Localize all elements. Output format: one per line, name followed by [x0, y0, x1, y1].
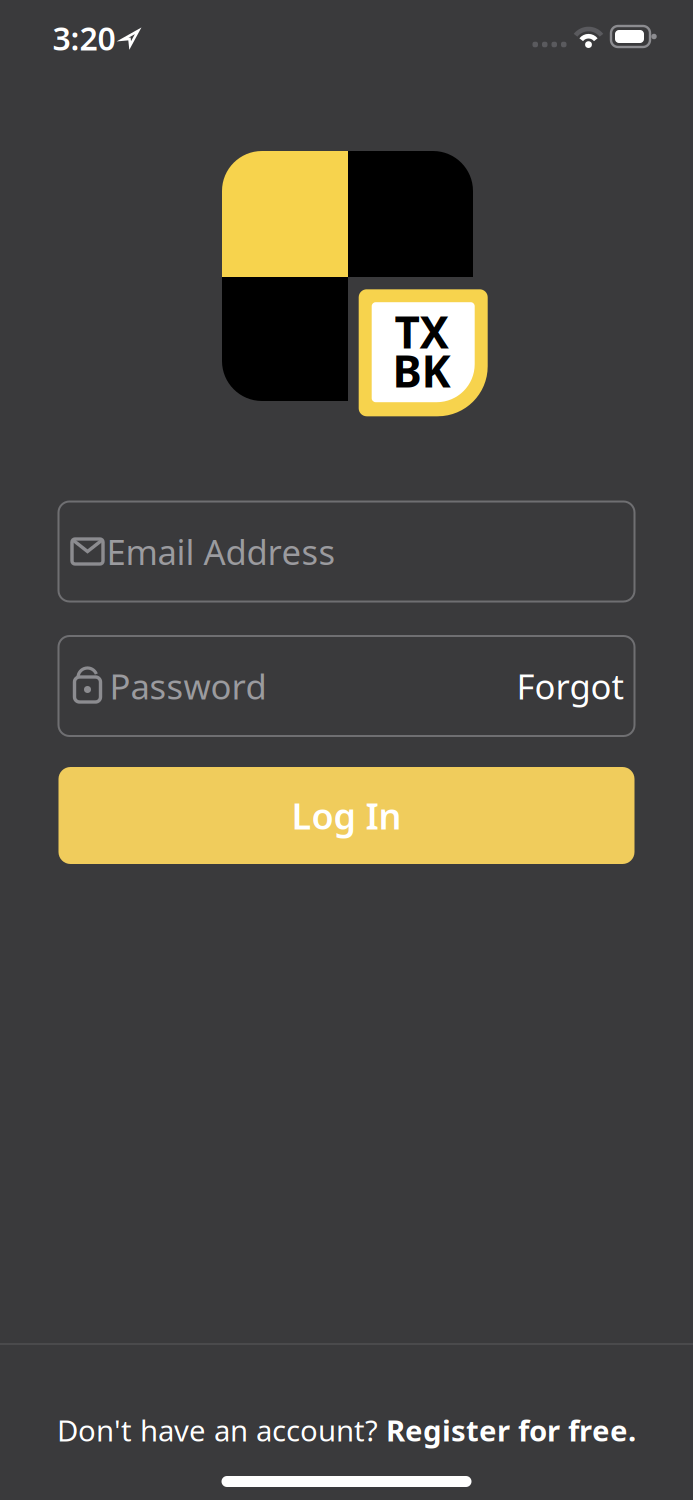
staticText: Password	[109, 663, 266, 709]
button[interactable]: Log In	[58, 767, 634, 864]
button[interactable]: Email Address	[58, 501, 634, 601]
staticText: Don't have an account? Register for free…	[57, 1410, 636, 1449]
button[interactable]: Don't have an account? Register for free…	[57, 1410, 636, 1449]
staticText: TX	[394, 302, 448, 361]
button[interactable]: Forgot	[516, 663, 624, 709]
staticText: Log In	[291, 792, 401, 839]
staticText: Email Address	[106, 528, 335, 574]
staticText: BK	[392, 341, 450, 400]
button[interactable]: Password	[58, 636, 634, 736]
staticText: 3:20	[52, 17, 115, 59]
staticText: Forgot	[516, 663, 624, 709]
